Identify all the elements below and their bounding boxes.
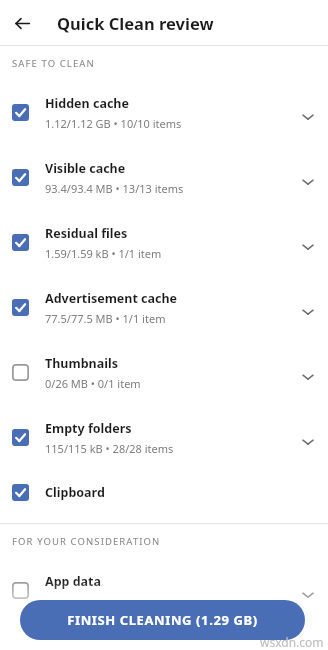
staticText: 93.4/93.4 MB • 13/13 items — [45, 181, 184, 196]
staticText: Visible cache — [45, 160, 126, 177]
button[interactable]: Empty folders checkbox — [0, 405, 45, 470]
staticText: 115/115 kB • 28/28 items — [45, 441, 174, 456]
button[interactable]: Advertisement cache checkbox — [0, 275, 45, 340]
staticText: Clipboard — [45, 484, 105, 501]
button[interactable]: Visible cache checkbox — [0, 145, 45, 210]
button[interactable]: Residual files checkbox — [0, 210, 45, 275]
staticText: 1.12/1.12 GB • 10/10 items — [45, 116, 182, 131]
staticText: Empty folders — [45, 420, 132, 437]
staticText: SAFE TO CLEAN — [12, 57, 95, 70]
button[interactable]: Residual files checkbox — [0, 210, 328, 275]
staticText: Advertisement cache — [45, 290, 178, 307]
button[interactable]: FINISH CLEANING (1.29 GB) — [20, 600, 305, 640]
staticText: 77.5/77.5 MB • 1/1 item — [45, 311, 166, 326]
button[interactable]: Expand Thumbnails — [288, 340, 328, 405]
staticText: wsxdn.com — [260, 634, 324, 650]
staticText: FINISH CLEANING (1.29 GB) — [67, 611, 258, 629]
button[interactable]: Clipboard checkbox — [0, 470, 45, 515]
staticText: 1.59/1.59 kB • 1/1 item — [45, 246, 162, 261]
button[interactable]: Expand Residual files — [288, 210, 328, 275]
button[interactable]: Hidden cache checkbox — [0, 80, 45, 145]
button[interactable]: App data checkbox — [0, 558, 45, 623]
button[interactable]: Expand Empty folders — [288, 405, 328, 470]
button[interactable]: Thumbnails checkbox — [0, 340, 328, 405]
staticText: 0/26 MB • 0/1 item — [45, 376, 141, 391]
staticText: Quick Clean review — [57, 12, 214, 34]
staticText: FOR YOUR CONSIDERATION — [12, 535, 161, 548]
staticText: App data — [45, 573, 102, 590]
button[interactable]: Clipboard checkbox — [0, 470, 328, 515]
button[interactable]: Hidden cache checkbox — [0, 80, 328, 145]
button[interactable]: Thumbnails checkbox — [0, 340, 45, 405]
button[interactable]: Advertisement cache checkbox — [0, 275, 328, 340]
button[interactable]: Expand App data — [288, 558, 328, 623]
button[interactable]: Visible cache checkbox — [0, 145, 328, 210]
staticText: Hidden cache — [45, 95, 129, 112]
button[interactable]: Expand Advertisement cache — [288, 275, 328, 340]
staticText: Thumbnails — [45, 355, 118, 372]
button[interactable]: Back — [0, 1, 44, 45]
staticText: Residual files — [45, 225, 128, 242]
button[interactable]: App data checkbox — [0, 558, 328, 623]
button[interactable]: Expand Visible cache — [288, 145, 328, 210]
button[interactable]: Empty folders checkbox — [0, 405, 328, 470]
button[interactable]: Expand Hidden cache — [288, 80, 328, 145]
